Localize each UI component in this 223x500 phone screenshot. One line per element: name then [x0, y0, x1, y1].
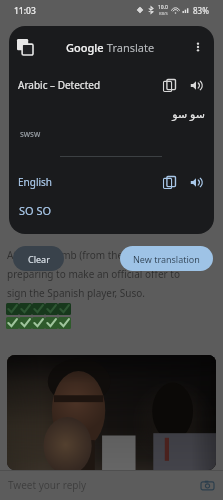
button[interactable]: New translation: [120, 246, 213, 271]
staticText: Atleti confirmb (from the club) are: [7, 248, 167, 262]
staticText: English: [18, 175, 53, 189]
staticText: KB/S: [159, 11, 168, 16]
staticText: سو سو: [9, 106, 205, 121]
button[interactable]: Listen to translation: [184, 170, 208, 194]
button[interactable]: More options: [186, 35, 210, 59]
button[interactable]: Clear: [13, 246, 64, 271]
button[interactable]: Copy source text: [157, 73, 181, 97]
staticText: SO SO: [19, 203, 52, 218]
staticText: sign the Spanish player, Suso.: [7, 286, 145, 300]
other: Add photo: [195, 473, 219, 497]
staticText: 83%: [193, 5, 209, 16]
button[interactable]: Listen to source text: [184, 73, 208, 97]
staticText: Google: [66, 40, 104, 55]
staticText: Translate: [104, 40, 155, 55]
staticText: Clear: [28, 253, 50, 265]
staticText: Tweet your reply: [8, 478, 87, 492]
button[interactable]: Copy translation: [157, 170, 181, 194]
staticText: swsw: [20, 128, 41, 139]
button[interactable]: Tweet your reply: [0, 470, 223, 500]
staticText: 10.0: [158, 4, 168, 11]
staticText: Arabic – Detected: [18, 78, 101, 92]
staticText: preparing to make an official offer to: [7, 267, 180, 281]
staticText: 11:03: [14, 5, 36, 17]
staticText: New translation: [133, 253, 200, 265]
